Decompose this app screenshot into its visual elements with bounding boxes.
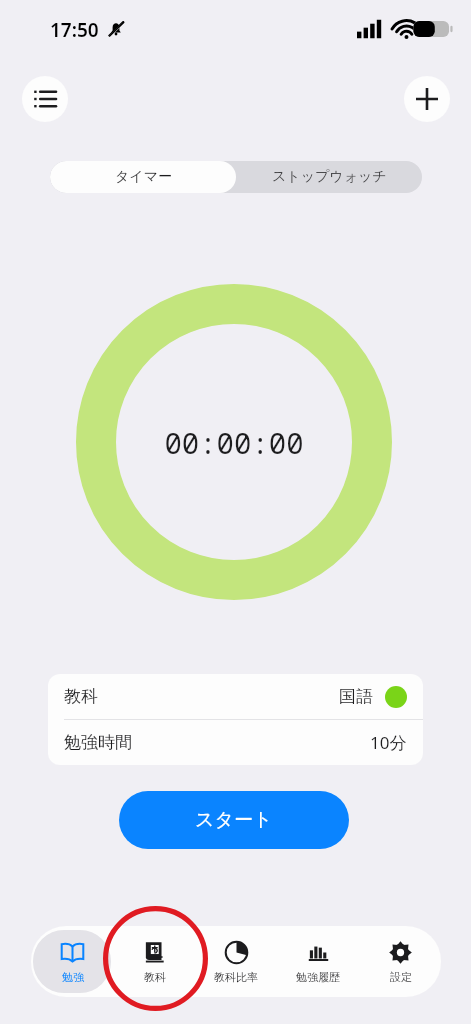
staticText: タイマー (115, 168, 172, 186)
button[interactable]: 勉強 (31, 926, 113, 997)
staticText: 10分 (370, 731, 407, 754)
staticText: スタート (195, 808, 273, 832)
staticText: 00:00:00 (164, 423, 304, 462)
staticText: 勉強 (62, 970, 84, 984)
staticText: 教科比率 (214, 970, 258, 984)
staticText: 教科 (64, 686, 98, 707)
button[interactable]: スタート (119, 791, 349, 849)
staticText: ストップウォッチ (272, 168, 387, 186)
button[interactable]: 教科 (48, 674, 423, 719)
button[interactable]: 教科 (113, 926, 195, 997)
staticText: 設定 (390, 970, 412, 984)
staticText: 勉強履歴 (296, 970, 340, 984)
button[interactable]: List (22, 76, 68, 122)
staticText: 国語 (339, 686, 373, 707)
staticText: 教科 (144, 970, 166, 984)
button[interactable]: 教科比率 (195, 926, 277, 997)
staticText: 17:50 (50, 17, 99, 43)
staticText: 勉強時間 (64, 732, 132, 753)
button[interactable]: タイマー (50, 161, 236, 193)
button[interactable]: 設定 (359, 926, 441, 997)
button[interactable]: ストップウォッチ (236, 161, 422, 193)
button[interactable]: Add (404, 76, 450, 122)
button[interactable]: 勉強履歴 (277, 926, 359, 997)
button[interactable]: 勉強時間 (48, 720, 423, 765)
